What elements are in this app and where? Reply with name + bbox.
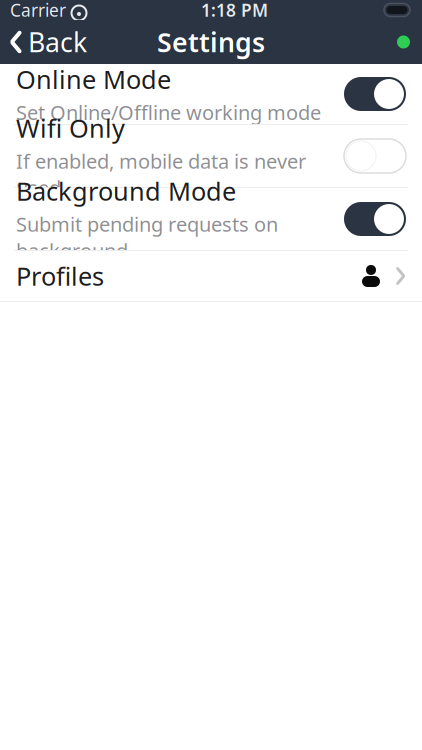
staticText: Profiles	[16, 259, 104, 293]
staticText: Carrier	[10, 0, 66, 21]
staticText: Background Mode	[16, 174, 236, 208]
button[interactable]: Online Mode	[0, 64, 422, 124]
staticText: If enabled, mobile data is never used	[16, 148, 306, 201]
staticText: Back	[28, 24, 87, 60]
button[interactable]: Back	[0, 20, 96, 64]
button[interactable]: Profiles	[0, 251, 422, 301]
button[interactable]: Online status	[385, 20, 422, 64]
staticText: Set Online/Offline working mode	[16, 99, 321, 126]
staticText: 1:18 PM	[201, 0, 268, 21]
staticText: Settings	[157, 24, 265, 60]
staticText: Wifi Only	[16, 111, 125, 145]
staticText: Submit pending requests on background	[16, 211, 278, 264]
button[interactable]: Background Mode	[0, 188, 422, 250]
staticText: Online Mode	[16, 62, 171, 96]
button[interactable]: Wifi Only	[0, 125, 422, 187]
